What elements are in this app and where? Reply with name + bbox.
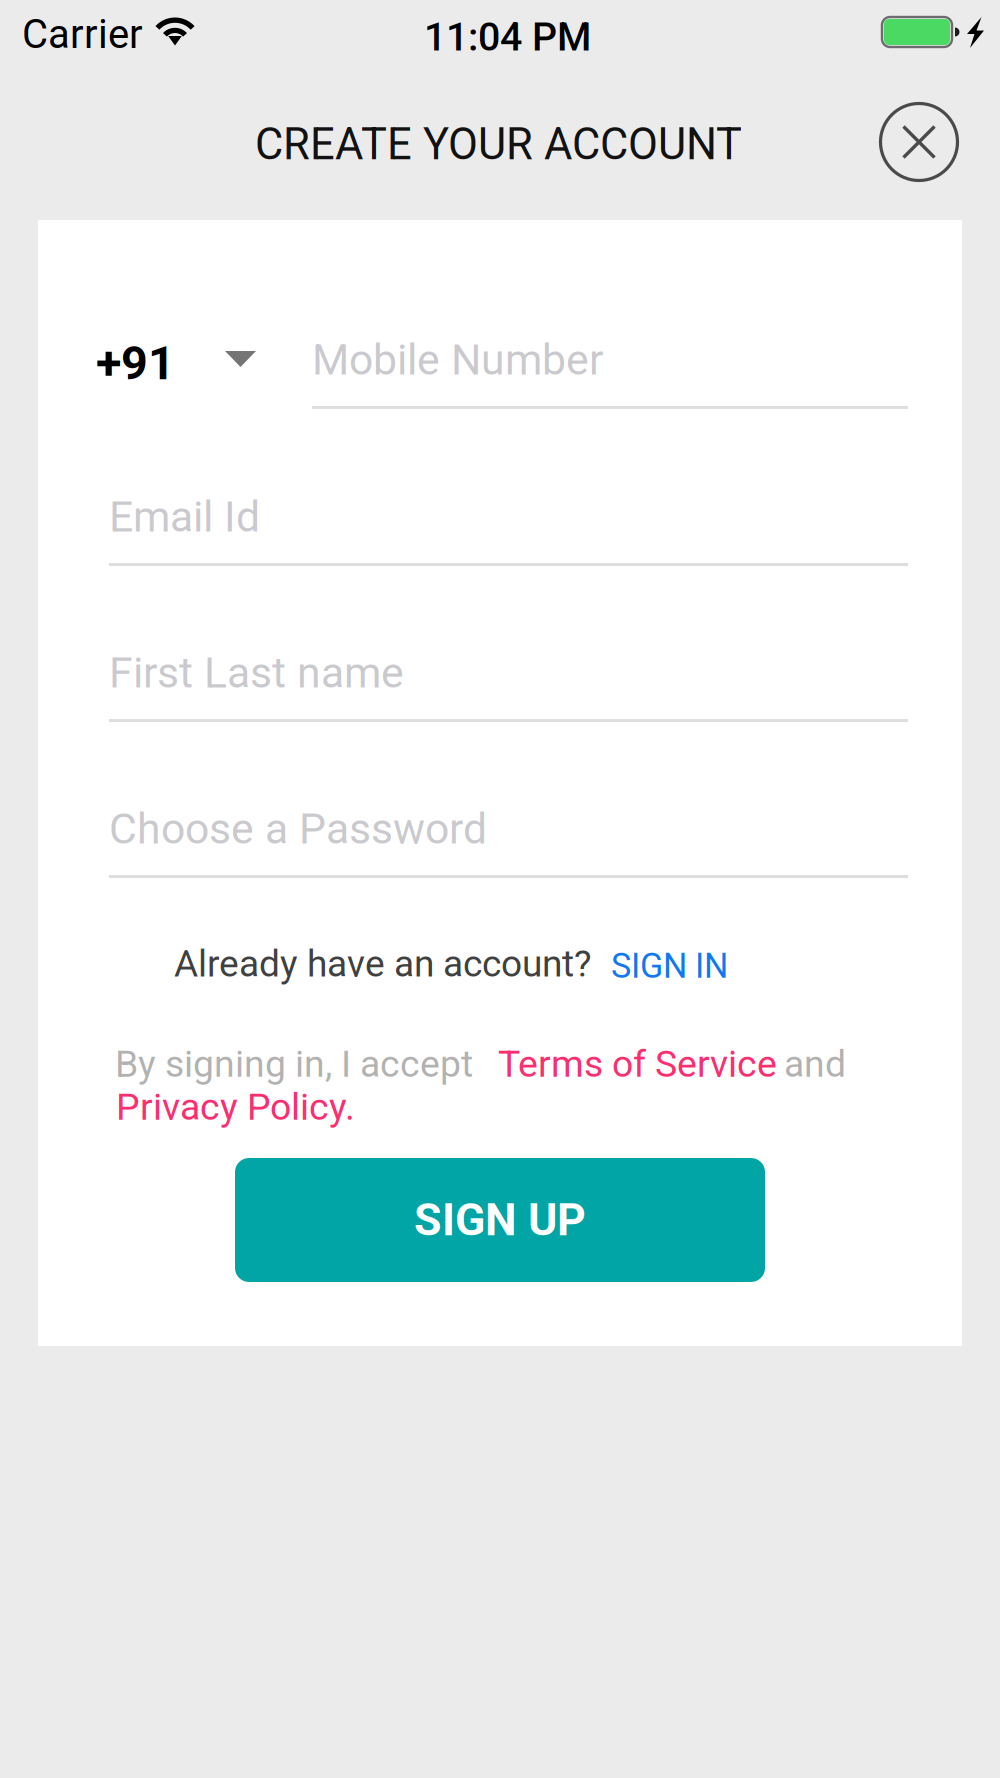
staticText: By signing in, I accept (115, 1042, 473, 1086)
staticText: +91 (96, 336, 175, 391)
button[interactable]: Terms of Service (498, 1042, 777, 1086)
staticText: CREATE YOUR ACCOUNT (255, 119, 742, 170)
staticText: Terms of Service (498, 1042, 777, 1086)
button[interactable]: SIGN IN (611, 946, 728, 986)
button[interactable]: First Last name (109, 631, 908, 731)
button[interactable]: Country code +91 (90, 318, 268, 418)
staticText: SIGN IN (611, 946, 728, 986)
staticText: Already have an account? (174, 942, 592, 985)
staticText: Privacy Policy. (116, 1085, 355, 1129)
staticText: Email Id (109, 492, 260, 542)
staticText: Mobile Number (312, 335, 603, 385)
button[interactable]: Choose a Password (109, 787, 908, 887)
button[interactable]: SIGN UP (235, 1158, 765, 1282)
button[interactable]: Email Id (109, 475, 908, 575)
staticText: SIGN UP (414, 1194, 586, 1246)
button[interactable]: Privacy Policy. (116, 1085, 355, 1129)
staticText: 11:04 PM (424, 14, 591, 60)
button[interactable]: Close (876, 99, 962, 185)
staticText: Choose a Password (109, 804, 487, 854)
staticText: Carrier (22, 11, 143, 58)
staticText: First Last name (109, 648, 404, 698)
button[interactable]: Mobile Number (312, 318, 908, 418)
staticText: and (784, 1042, 846, 1086)
